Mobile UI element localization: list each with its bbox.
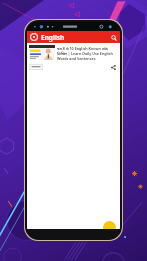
button[interactable]: Search xyxy=(108,32,119,43)
staticText: English xyxy=(41,33,65,42)
button[interactable]: Add xyxy=(103,221,116,234)
button[interactable] xyxy=(29,64,43,70)
staticText: बस 8 से 10 English Known सब्द सिखिए | Le… xyxy=(57,46,118,61)
button[interactable]: बस 8 से 10 English Known सब्द सिखिए | Le… xyxy=(27,45,120,61)
button[interactable]: Share xyxy=(109,63,117,71)
button[interactable]: App logo xyxy=(30,33,38,41)
